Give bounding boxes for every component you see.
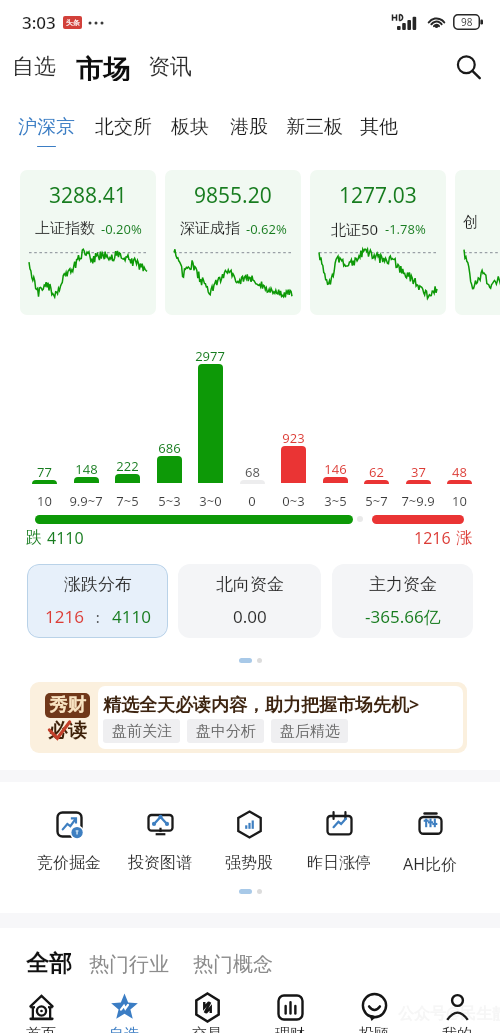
button[interactable]: 自选	[8, 46, 60, 88]
staticText: -365.66亿	[365, 605, 441, 628]
staticText: 投顾	[359, 1025, 389, 1033]
staticText: 1216	[414, 527, 451, 549]
staticText: 全部	[26, 949, 72, 977]
staticText: 5~3	[158, 492, 181, 510]
button[interactable]: 市场	[72, 46, 134, 88]
button[interactable]: 盘后精选	[271, 719, 348, 743]
staticText: 北向资金	[216, 574, 284, 595]
staticText: 港股	[230, 115, 268, 139]
staticText: 秀财	[49, 694, 86, 717]
staticText: 923	[282, 429, 305, 447]
staticText: 3~0	[199, 492, 222, 510]
staticText: 强势股	[225, 853, 273, 873]
staticText: 9.9~7	[69, 492, 103, 510]
button[interactable]: 3288.41	[20, 170, 156, 315]
staticText: 交易	[192, 1025, 222, 1033]
staticText: 62	[369, 463, 384, 481]
button[interactable]: 其他	[354, 112, 404, 149]
staticText: 222	[116, 457, 139, 475]
button[interactable]: 沪深京	[12, 112, 81, 150]
staticText: 77	[37, 463, 52, 481]
button[interactable]: 我的	[419, 986, 495, 1033]
staticText: 精选全天必读内容，助力把握市场先机>	[103, 692, 420, 717]
button[interactable]: 竞价掘金	[27, 806, 111, 878]
staticText: 主力资金	[369, 574, 437, 595]
staticText: 2977	[195, 347, 225, 365]
staticText: 3~5	[324, 492, 347, 510]
button[interactable]: 盘前关注	[103, 719, 180, 743]
staticText: 北证50	[331, 219, 379, 239]
staticText: 深证成指	[180, 219, 240, 238]
staticText: 3288.41	[49, 181, 127, 210]
staticText: 盘后精选	[280, 722, 340, 741]
staticText: 北交所	[95, 115, 152, 139]
button[interactable]: 资讯	[144, 46, 196, 88]
button[interactable]: 北交所	[89, 112, 158, 149]
button[interactable]: 9855.20	[165, 170, 301, 315]
staticText: 涨	[456, 528, 472, 548]
staticText: -0.62%	[246, 220, 287, 238]
staticText: 公众号@民生靓赵凯	[398, 1002, 500, 1024]
staticText: 148	[75, 460, 98, 478]
staticText: 9855.20	[194, 181, 272, 210]
staticText: 1216	[45, 605, 84, 628]
staticText: 昨日涨停	[307, 853, 371, 873]
staticText: 新三板	[286, 115, 343, 139]
staticText: 投资图谱	[128, 853, 192, 873]
staticText: 146	[324, 460, 347, 478]
button[interactable]: 热门概念	[187, 946, 279, 983]
staticText: 5~7	[365, 492, 388, 510]
button[interactable]: 北向资金	[178, 564, 321, 638]
staticText: 涨跌分布	[64, 574, 132, 595]
button[interactable]: AH比价	[388, 806, 472, 878]
button[interactable]: 港股	[224, 112, 274, 149]
button[interactable]: 热门行业	[83, 946, 175, 983]
button[interactable]: 板块	[165, 112, 215, 149]
button[interactable]: 投顾	[336, 986, 412, 1033]
button[interactable]: 创	[455, 170, 500, 315]
staticText: 10	[452, 492, 467, 510]
staticText: 98	[461, 15, 473, 29]
button[interactable]: Search	[448, 47, 488, 87]
staticText: 0.00	[233, 605, 267, 628]
staticText: 理财	[275, 1025, 305, 1033]
staticText: 1277.03	[339, 181, 417, 210]
button[interactable]: 全部	[20, 943, 78, 983]
staticText: 48	[452, 463, 467, 481]
button[interactable]: 新三板	[280, 112, 349, 149]
staticText: 跌	[26, 528, 42, 548]
staticText: 盘中分析	[196, 722, 256, 741]
button[interactable]: 盘中分析	[187, 719, 264, 743]
staticText: 上证指数	[35, 219, 95, 238]
button[interactable]: 首页	[3, 986, 79, 1033]
button[interactable]: 自选	[86, 986, 162, 1033]
staticText: 自选	[109, 1025, 139, 1033]
button[interactable]: 强势股	[207, 806, 291, 878]
staticText: 我的	[442, 1025, 472, 1033]
staticText: :	[84, 607, 112, 627]
staticText: AH比价	[403, 853, 458, 875]
staticText: 板块	[171, 115, 209, 139]
button[interactable]: 昨日涨停	[297, 806, 381, 878]
button[interactable]: 主力资金	[332, 564, 473, 638]
button[interactable]: 秀财	[30, 682, 467, 753]
staticText: 沪深京	[18, 115, 75, 139]
staticText: -0.20%	[101, 220, 142, 238]
staticText: 热门概念	[193, 952, 273, 977]
button[interactable]: 1277.03	[310, 170, 446, 315]
button[interactable]: 交易	[169, 986, 245, 1033]
button[interactable]: 投资图谱	[118, 806, 202, 878]
staticText: 3:03	[22, 11, 56, 34]
button[interactable]: 理财	[252, 986, 328, 1033]
staticText: 市场	[76, 53, 130, 81]
staticText: 资讯	[148, 53, 192, 81]
staticText: 37	[411, 463, 426, 481]
staticText: 68	[245, 463, 260, 481]
staticText: 热门行业	[89, 952, 169, 977]
staticText: 4110	[47, 527, 84, 549]
staticText: 4110	[112, 605, 151, 628]
staticText: -1.78%	[385, 220, 426, 238]
button[interactable]: 涨跌分布	[27, 564, 168, 638]
staticText: 7~9.9	[401, 492, 435, 510]
staticText: 7~5	[116, 492, 139, 510]
